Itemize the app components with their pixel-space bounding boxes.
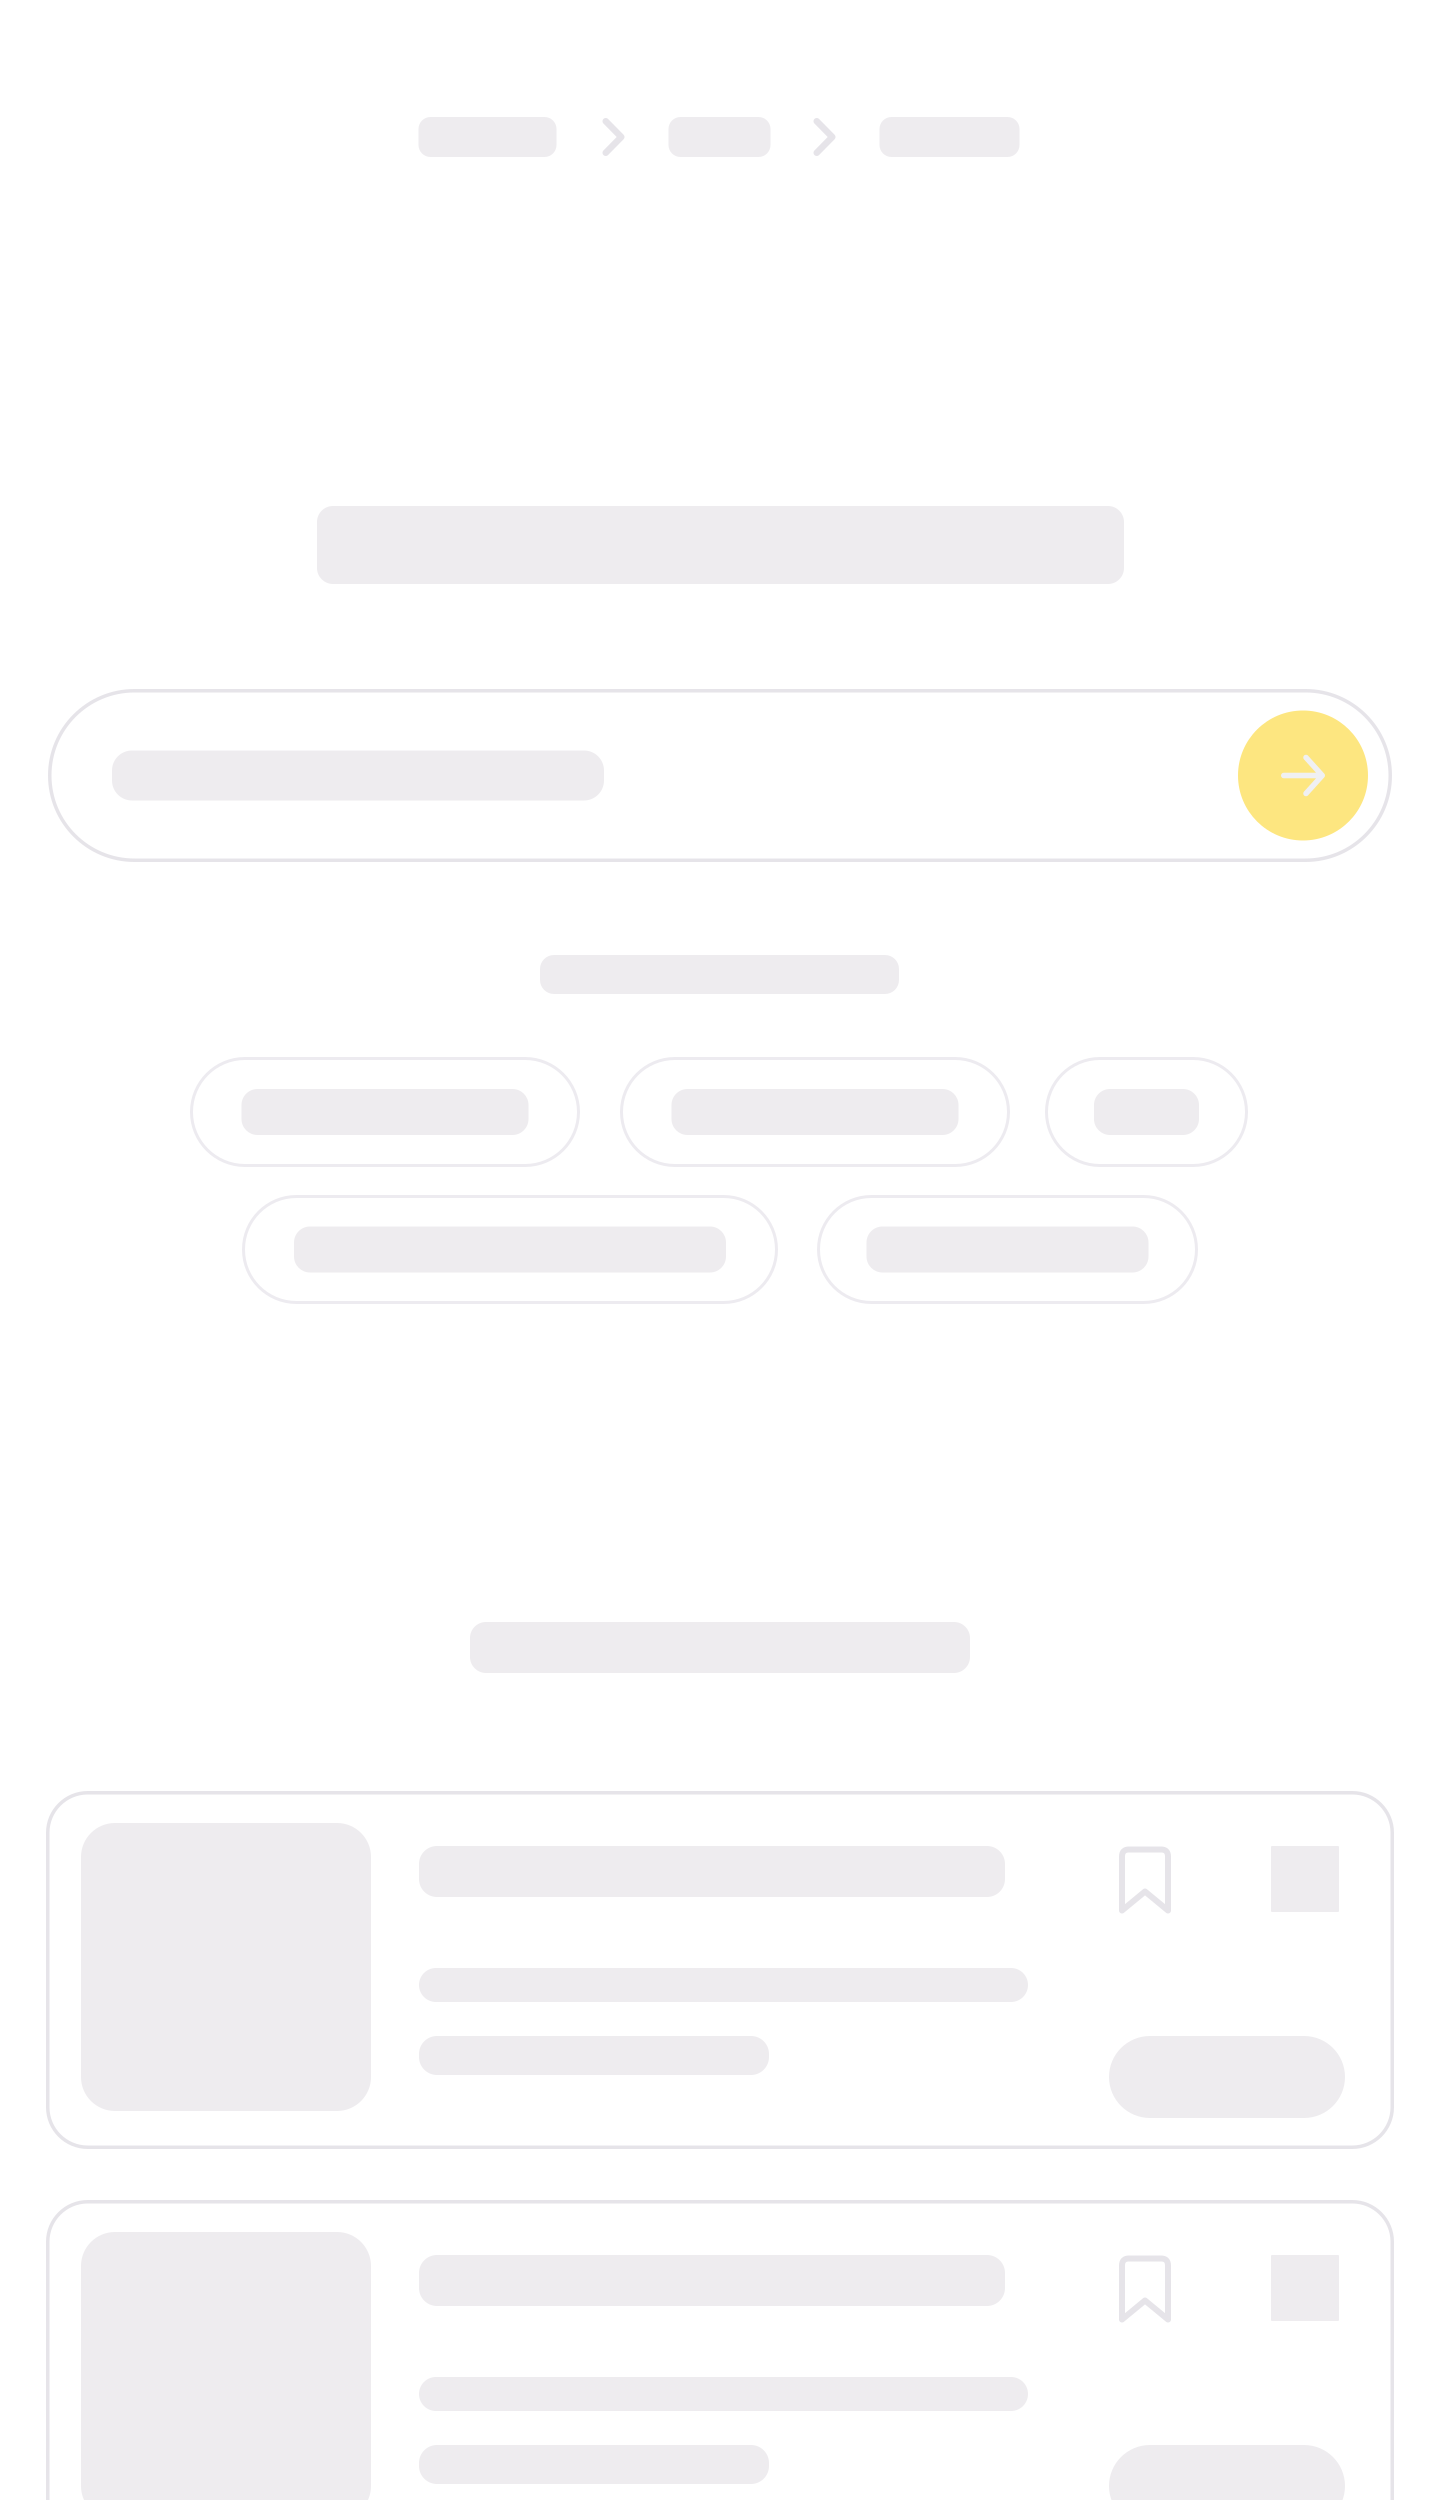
button[interactable]: Search <box>1238 710 1368 840</box>
button[interactable]: Suggested search <box>190 1057 580 1167</box>
button[interactable]: Suggested search <box>242 1195 778 1304</box>
button[interactable]: Breadcrumb level two <box>668 117 770 157</box>
button[interactable]: Suggested search <box>817 1195 1198 1304</box>
button[interactable]: Suggested search <box>620 1057 1010 1167</box>
button[interactable]: Suggested search <box>1045 1057 1248 1167</box>
button[interactable]: Search result <box>46 2200 1394 2500</box>
button[interactable]: Search result <box>46 1791 1394 2149</box>
